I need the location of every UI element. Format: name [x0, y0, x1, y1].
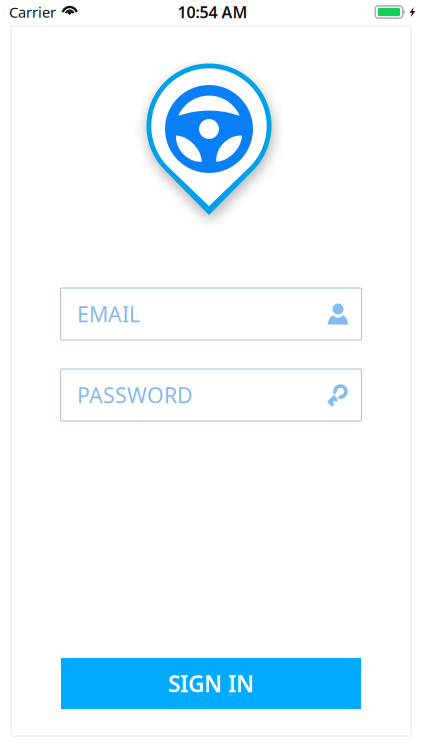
staticText: Carrier — [9, 2, 56, 22]
staticText: 10:54 AM — [177, 1, 247, 23]
staticText: EMAIL — [77, 300, 140, 328]
button[interactable]: PASSWORD — [60, 369, 361, 421]
staticText: SIGN IN — [168, 668, 254, 698]
button[interactable]: EMAIL — [60, 288, 361, 340]
button[interactable]: SIGN IN — [61, 658, 361, 709]
staticText: PASSWORD — [77, 381, 193, 409]
